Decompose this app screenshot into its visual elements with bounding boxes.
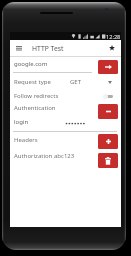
staticText: Authorization — [14, 152, 53, 160]
staticText: GET — [70, 78, 82, 86]
staticText: HTTP Test — [32, 44, 64, 53]
button[interactable]: Follow redirects — [10, 89, 121, 103]
button[interactable]: Request type — [10, 75, 121, 89]
staticText: abc123 — [54, 152, 75, 160]
staticText: Authentication — [14, 104, 56, 112]
button[interactable]: Add header — [98, 134, 118, 149]
staticText: Headers — [14, 136, 38, 144]
button[interactable]: Remove authentication — [98, 104, 118, 119]
staticText: 12:28 — [106, 33, 121, 41]
staticText: Follow redirects — [14, 92, 59, 100]
staticText: login — [14, 118, 29, 126]
button[interactable]: Delete header — [98, 153, 118, 168]
button[interactable]: Favorite — [105, 41, 118, 54]
button[interactable]: Send request — [98, 60, 118, 74]
staticText: google.com — [14, 60, 48, 68]
button[interactable]: Open navigation menu — [12, 41, 25, 54]
staticText: Request type — [14, 78, 51, 86]
